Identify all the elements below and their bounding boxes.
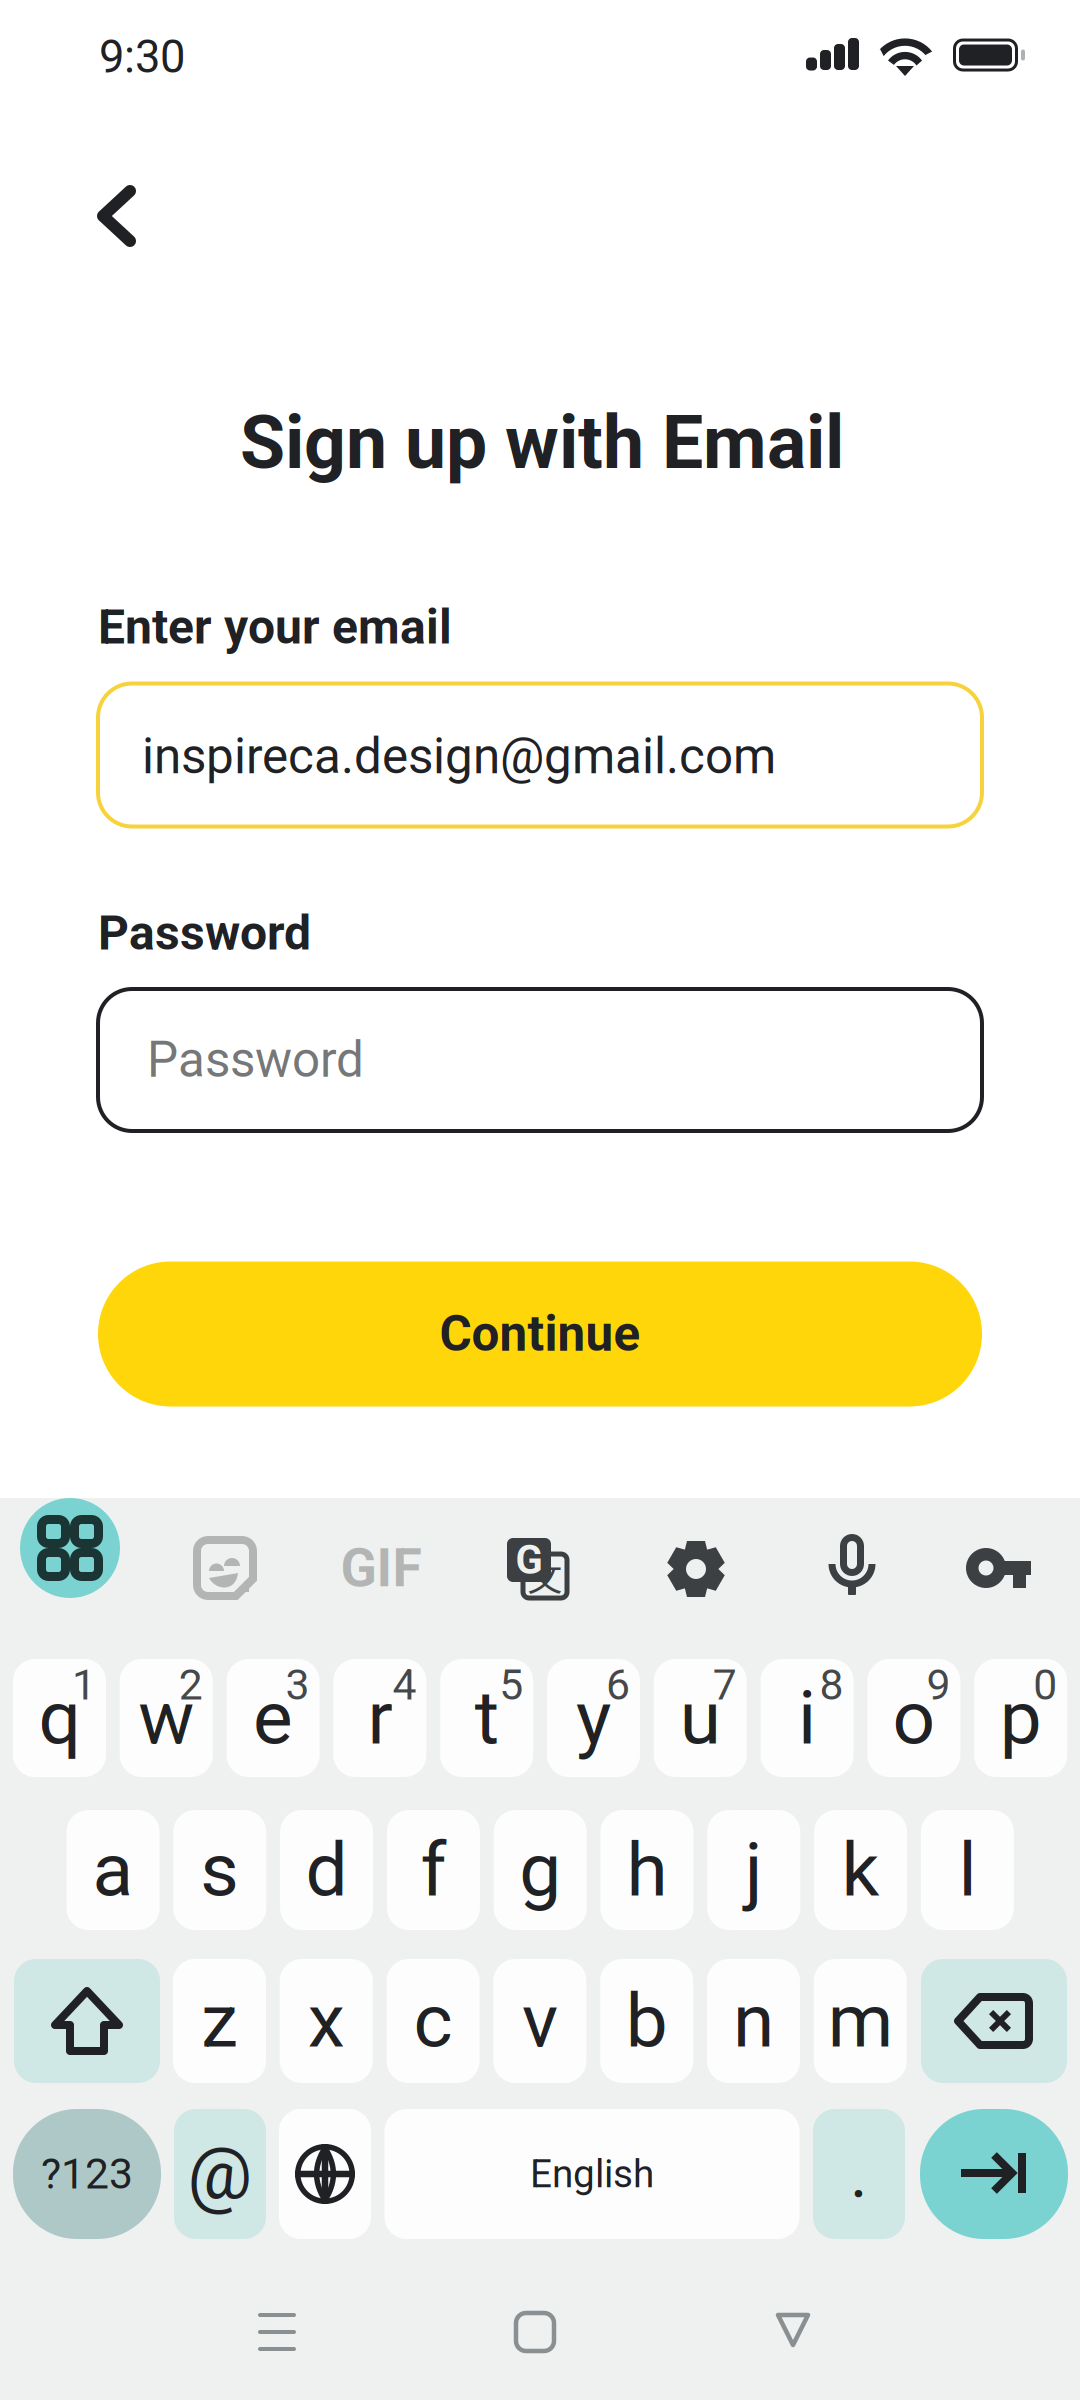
button[interactable]: n (707, 1959, 800, 2083)
button[interactable]: Voice input (802, 1516, 902, 1616)
button[interactable]: s (173, 1810, 266, 1930)
button[interactable]: At sign (174, 2109, 266, 2239)
staticText: i (798, 1674, 816, 1762)
button[interactable]: Back (57, 156, 177, 276)
staticText: e (253, 1674, 293, 1762)
button[interactable]: u (654, 1659, 747, 1777)
staticText: f (420, 1826, 446, 1914)
button[interactable]: English (384, 2109, 799, 2239)
staticText: p (1000, 1674, 1042, 1762)
staticText: 3 (286, 1660, 310, 1710)
button[interactable]: Shift (14, 1959, 160, 2083)
staticText: GIF (340, 1537, 421, 1599)
staticText: o (892, 1674, 935, 1762)
button[interactable]: c (387, 1959, 480, 2083)
button[interactable]: Clipboard (20, 1498, 120, 1598)
button[interactable]: Recent apps (202, 2277, 352, 2387)
button[interactable]: Settings (646, 1519, 746, 1619)
staticText: 9:30 (99, 30, 185, 83)
staticText: h (626, 1826, 667, 1914)
staticText: Sign up with Email (240, 400, 844, 486)
staticText: b (626, 1977, 668, 2065)
staticText: j (745, 1826, 763, 1914)
staticText: Continue (439, 1305, 640, 1363)
button[interactable]: b (600, 1959, 693, 2083)
staticText: 7 (713, 1660, 737, 1710)
staticText: l (958, 1826, 976, 1914)
staticText: y (576, 1674, 611, 1762)
button[interactable]: Symbols (13, 2109, 161, 2239)
button[interactable]: Home (460, 2277, 610, 2387)
button[interactable]: p (974, 1659, 1067, 1777)
staticText: v (522, 1977, 558, 2065)
staticText: 文 (527, 1551, 562, 1601)
button[interactable]: Backspace (921, 1959, 1067, 2083)
staticText: inspireca.design@gmail.com (142, 728, 776, 785)
staticText: z (201, 1977, 238, 2065)
button[interactable]: i (761, 1659, 854, 1777)
button[interactable]: l (921, 1810, 1014, 1930)
button[interactable]: q (13, 1659, 106, 1777)
staticText: English (530, 2151, 654, 2197)
staticText: 5 (499, 1660, 523, 1710)
staticText: q (38, 1674, 80, 1762)
button[interactable]: Continue (98, 1261, 982, 1406)
staticText: s (200, 1826, 239, 1914)
button[interactable]: h (600, 1810, 693, 1930)
staticText: r (367, 1674, 392, 1762)
button[interactable]: k (814, 1810, 907, 1930)
button[interactable]: Enter (920, 2109, 1068, 2239)
button[interactable]: x (280, 1959, 373, 2083)
button[interactable]: z (173, 1959, 266, 2083)
staticText: x (308, 1977, 345, 2065)
staticText: G (515, 1537, 542, 1583)
staticText: w (138, 1674, 194, 1762)
staticText: ?123 (41, 2149, 133, 2199)
staticText: n (733, 1977, 774, 2065)
staticText: c (414, 1977, 453, 2065)
button[interactable]: y (547, 1659, 640, 1777)
staticText: d (306, 1826, 348, 1914)
staticText: Enter your email (98, 599, 452, 655)
button[interactable]: w (120, 1659, 213, 1777)
button[interactable]: r (333, 1659, 426, 1777)
staticText: @ (187, 2132, 252, 2216)
staticText: k (842, 1826, 880, 1914)
button[interactable]: Passwords (953, 1518, 1053, 1618)
button[interactable]: GIF (331, 1518, 431, 1618)
staticText: 0 (1033, 1660, 1057, 1710)
button[interactable]: v (493, 1959, 586, 2083)
staticText: m (828, 1977, 893, 2065)
staticText: 9 (926, 1660, 950, 1710)
staticText: t (475, 1674, 499, 1762)
button[interactable]: t (440, 1659, 533, 1777)
staticText: 4 (392, 1660, 416, 1710)
button[interactable]: Period (813, 2109, 905, 2239)
button[interactable]: m (814, 1959, 907, 2083)
button[interactable]: f (387, 1810, 480, 1930)
button[interactable]: Switch language (279, 2109, 371, 2239)
staticText: 2 (179, 1660, 203, 1710)
staticText: u (680, 1674, 721, 1762)
staticText: Password (147, 1031, 364, 1089)
button[interactable]: g (494, 1810, 587, 1930)
button[interactable]: d (280, 1810, 373, 1930)
staticText: 6 (606, 1660, 630, 1710)
button[interactable]: Translate (487, 1518, 587, 1618)
staticText: . (850, 2135, 868, 2213)
button[interactable]: Back (718, 2275, 868, 2385)
button[interactable]: a (66, 1810, 159, 1930)
staticText: a (92, 1826, 133, 1914)
button[interactable]: o (867, 1659, 960, 1777)
button[interactable]: j (707, 1810, 800, 1930)
staticText: g (519, 1826, 561, 1914)
staticText: 1 (72, 1660, 96, 1710)
button[interactable]: e (227, 1659, 320, 1777)
button[interactable]: Stickers (175, 1518, 275, 1618)
staticText: 8 (820, 1660, 844, 1710)
staticText: Password (98, 905, 311, 961)
